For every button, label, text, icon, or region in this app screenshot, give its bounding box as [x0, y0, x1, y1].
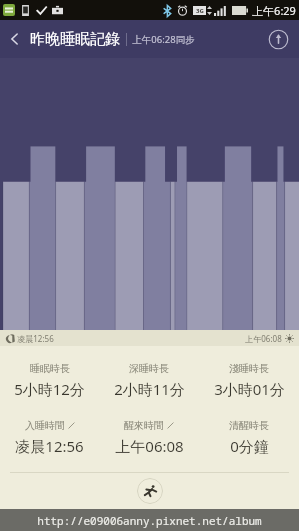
staticText: 凌晨12:56 — [17, 333, 54, 344]
button[interactable]: 睡眠時長 — [0, 360, 99, 401]
button[interactable]: 清醒時長 — [199, 417, 299, 458]
staticText: 醒來時間 — [124, 419, 164, 432]
staticText: 凌晨12:56 — [15, 436, 84, 456]
button[interactable]: 醒來時間 — [99, 417, 199, 458]
staticText: 昨晚睡眠記錄 — [30, 30, 120, 49]
staticText: 上午06:28同步 — [132, 33, 195, 46]
staticText: 清醒時長 — [229, 419, 269, 432]
staticText: 睡眠時長 — [30, 362, 70, 375]
button[interactable]: 淺睡時長 — [199, 360, 299, 401]
button[interactable]: Sync — [265, 26, 291, 52]
staticText: 5小時12分 — [14, 379, 85, 399]
staticText: 入睡時間 — [25, 419, 65, 432]
staticText: 深睡時長 — [129, 362, 169, 375]
staticText: 上午06:08 — [115, 436, 184, 456]
staticText: 3小時01分 — [214, 379, 285, 399]
staticText: 2小時11分 — [114, 379, 185, 399]
staticText: 淺睡時長 — [229, 362, 269, 375]
staticText: 上午06:08 — [245, 333, 282, 344]
staticText: 3G — [196, 7, 204, 15]
staticText: 上午6:29 — [252, 3, 296, 18]
staticText: 0分鐘 — [230, 436, 269, 456]
button[interactable]: 深睡時長 — [99, 360, 199, 401]
button[interactable]: Activity — [137, 478, 163, 504]
button[interactable]: Back — [0, 24, 30, 54]
button[interactable]: 入睡時間 — [0, 417, 99, 458]
staticText: http://e09006anny.pixnet.net/album — [37, 513, 262, 528]
